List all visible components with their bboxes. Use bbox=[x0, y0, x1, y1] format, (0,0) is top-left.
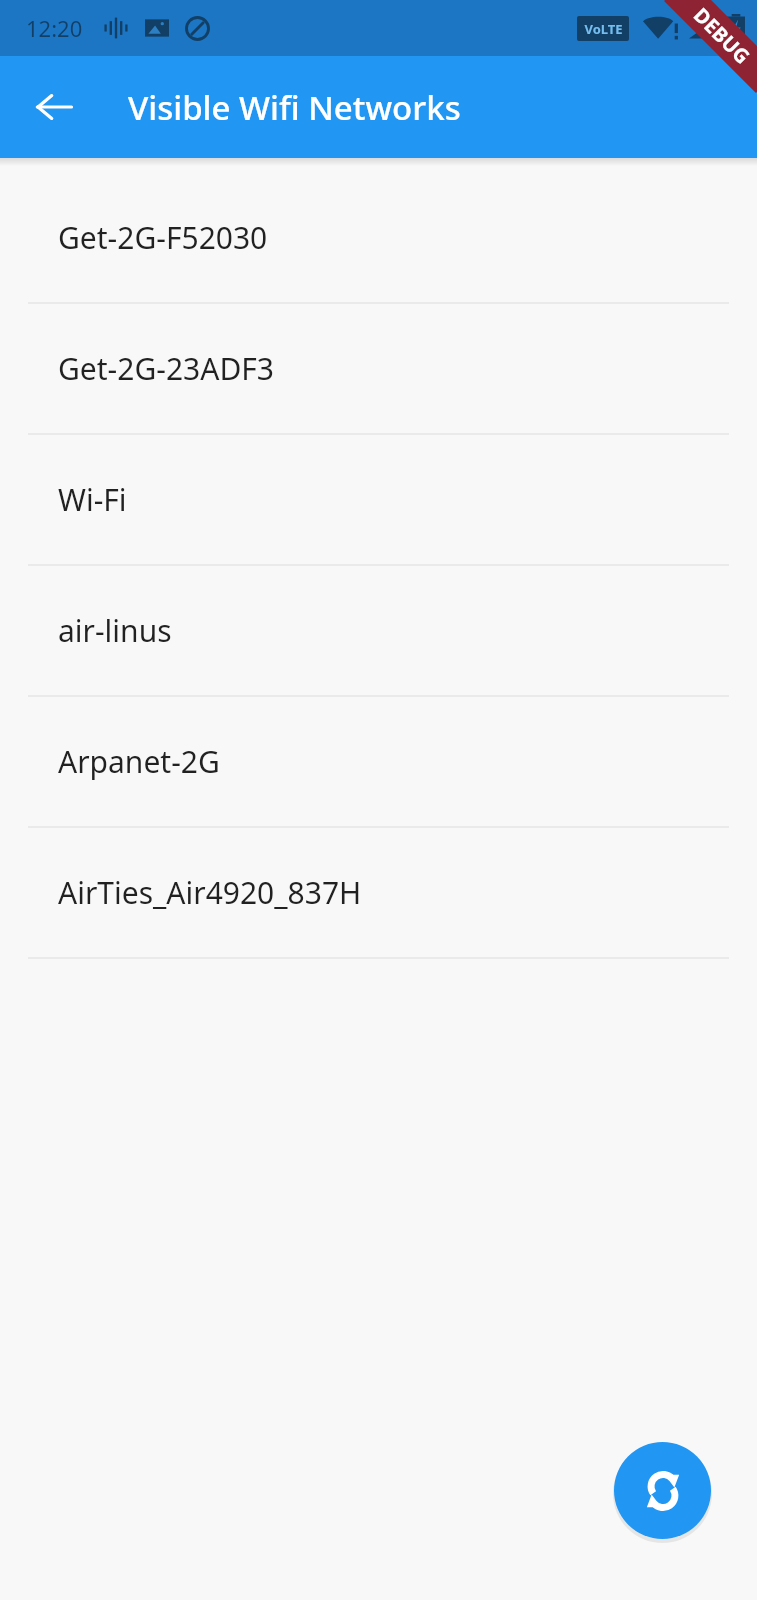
button[interactable]: AirTies_Air4920_837H bbox=[0, 828, 757, 957]
staticText: air-linus bbox=[58, 610, 172, 651]
staticText: AirTies_Air4920_837H bbox=[58, 872, 362, 913]
button[interactable]: Get-2G-F52030 bbox=[0, 173, 757, 302]
button[interactable]: Wi-Fi bbox=[0, 435, 757, 564]
button[interactable]: Refresh bbox=[614, 1442, 711, 1539]
staticText: Get-2G-23ADF3 bbox=[58, 348, 275, 389]
staticText: VoLTE bbox=[584, 20, 623, 38]
staticText: Visible Wifi Networks bbox=[128, 85, 461, 130]
staticText: 12:20 bbox=[26, 13, 83, 43]
staticText: Get-2G-F52030 bbox=[58, 217, 268, 258]
button[interactable]: Back bbox=[24, 77, 84, 137]
button[interactable]: air-linus bbox=[0, 566, 757, 695]
staticText: Wi-Fi bbox=[58, 479, 127, 520]
button[interactable]: Arpanet-2G bbox=[0, 697, 757, 826]
button[interactable]: Get-2G-23ADF3 bbox=[0, 304, 757, 433]
staticText: Arpanet-2G bbox=[58, 741, 220, 782]
staticText: DEBUG bbox=[688, 2, 756, 70]
